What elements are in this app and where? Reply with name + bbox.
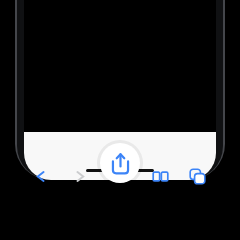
button[interactable]: Bookmarks (146, 162, 174, 190)
button[interactable]: Back (26, 162, 54, 190)
button[interactable]: Share (100, 143, 140, 183)
button[interactable]: Forward (66, 162, 94, 190)
button[interactable]: Tabs (183, 162, 211, 190)
